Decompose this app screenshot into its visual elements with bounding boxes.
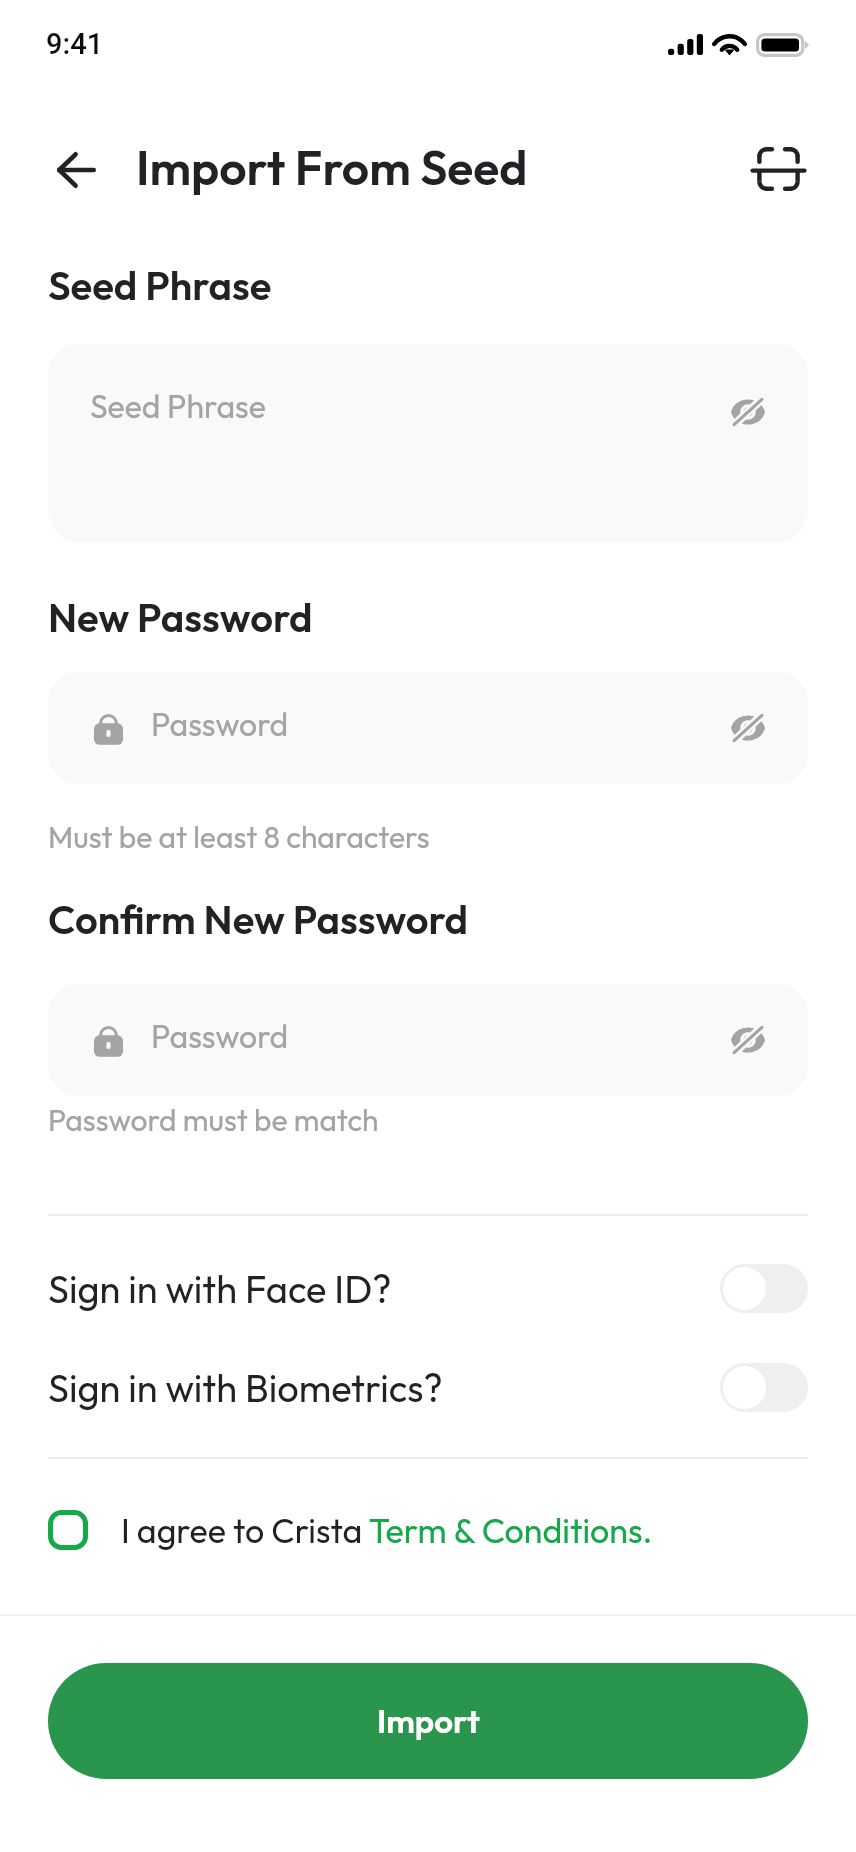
staticText: Password xyxy=(151,1016,289,1056)
staticText: Import From Seed xyxy=(136,137,528,197)
staticText: Confirm New Password xyxy=(48,894,469,944)
staticText: Must be at least 8 characters xyxy=(48,818,430,856)
button[interactable]: Sign in with Face ID? xyxy=(48,1264,808,1313)
button[interactable]: Back xyxy=(38,134,114,206)
button[interactable]: Import xyxy=(48,1663,808,1779)
staticText: New Password xyxy=(48,592,313,642)
button[interactable]: Password xyxy=(48,984,808,1096)
staticText: Import xyxy=(377,1700,480,1742)
staticText: I agree to Crista Term & Conditions. xyxy=(121,1509,653,1552)
button[interactable]: Show password xyxy=(712,1004,784,1076)
button[interactable]: Show seed phrase xyxy=(712,376,784,448)
button[interactable]: Seed Phrase xyxy=(48,344,808,542)
button[interactable]: Password xyxy=(48,672,808,784)
staticText: Seed Phrase xyxy=(90,386,266,426)
staticText: Sign in with Face ID? xyxy=(48,1265,392,1313)
staticText: 9:41 xyxy=(46,27,104,61)
button[interactable]: Scan QR code xyxy=(740,131,816,207)
button[interactable]: Sign in with Biometrics? xyxy=(48,1363,808,1412)
button[interactable]: I agree to Crista Term & Conditions. xyxy=(48,1505,678,1555)
button[interactable]: Show password xyxy=(712,692,784,764)
staticText: Sign in with Biometrics? xyxy=(48,1364,443,1412)
staticText: Seed Phrase xyxy=(48,260,272,310)
staticText: Password xyxy=(151,704,289,744)
staticText: Password must be match xyxy=(48,1101,379,1139)
